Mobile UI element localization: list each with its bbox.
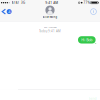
button[interactable]: Back <box>0 5 26 21</box>
staticText: 4 <box>8 9 10 14</box>
staticText: AT&T <box>11 1 19 5</box>
button[interactable]: Details <box>74 5 100 21</box>
staticText: Text Message <box>43 26 56 29</box>
staticText: Alice Wong <box>42 15 57 19</box>
staticText: Hi Bob <box>81 37 92 42</box>
staticText: Today 9:41 AM <box>39 29 61 33</box>
staticText: 9:41 AM <box>45 1 58 5</box>
staticText: 77% <box>83 1 89 5</box>
staticText: Send <box>89 96 97 100</box>
staticText: 3G <box>21 1 25 5</box>
